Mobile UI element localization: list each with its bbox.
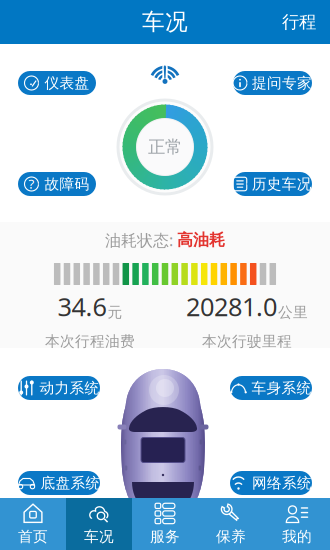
staticText: 历史车况: [252, 175, 312, 193]
staticText: 公里: [278, 303, 308, 321]
staticText: 网络系统: [252, 474, 312, 492]
button[interactable]: 车身系统: [230, 376, 312, 400]
staticText: 动力系统: [39, 379, 99, 397]
staticText: 行程: [282, 11, 316, 33]
staticText: ?: [28, 175, 34, 192]
button[interactable]: 仪表盘: [18, 71, 96, 95]
staticText: 34.6: [57, 290, 106, 323]
staticText: 我的: [282, 527, 312, 545]
button[interactable]: ?: [18, 172, 96, 196]
staticText: 故障码: [44, 175, 89, 193]
button[interactable]: 底盘系统: [18, 471, 100, 495]
button[interactable]: 车况: [66, 498, 132, 550]
button[interactable]: 服务: [132, 498, 198, 550]
staticText: 油耗状态:: [105, 229, 177, 251]
staticText: 车况: [84, 527, 114, 545]
button[interactable]: 网络系统: [230, 471, 312, 495]
button[interactable]: 动力系统: [18, 376, 100, 400]
staticText: 车身系统: [251, 379, 311, 397]
button[interactable]: 保养: [198, 498, 264, 550]
staticText: 服务: [150, 527, 180, 545]
button[interactable]: 首页: [0, 498, 66, 550]
staticText: 车况: [142, 8, 188, 36]
staticText: 本次行驶里程: [202, 332, 292, 350]
staticText: 仪表盘: [44, 74, 89, 92]
staticText: 保养: [216, 527, 246, 545]
staticText: 本次行程油费: [45, 332, 135, 350]
staticText: 元: [107, 303, 122, 321]
staticText: 首页: [18, 527, 48, 545]
staticText: 底盘系统: [40, 474, 100, 492]
staticText: 20281.0: [186, 290, 277, 323]
button[interactable]: 我的: [264, 498, 330, 550]
button[interactable]: 历史车况: [233, 172, 312, 196]
staticText: 提问专家: [252, 74, 312, 92]
button[interactable]: 提问专家: [233, 71, 312, 95]
staticText: 高油耗: [177, 230, 225, 250]
button[interactable]: 行程: [268, 0, 330, 44]
staticText: 正常: [148, 136, 182, 158]
